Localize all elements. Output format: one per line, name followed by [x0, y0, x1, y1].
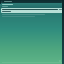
- button[interactable]: Back: [1, 1, 3, 3]
- button[interactable]: More options: [61, 1, 63, 3]
- button[interactable]: [1, 8, 63, 13]
